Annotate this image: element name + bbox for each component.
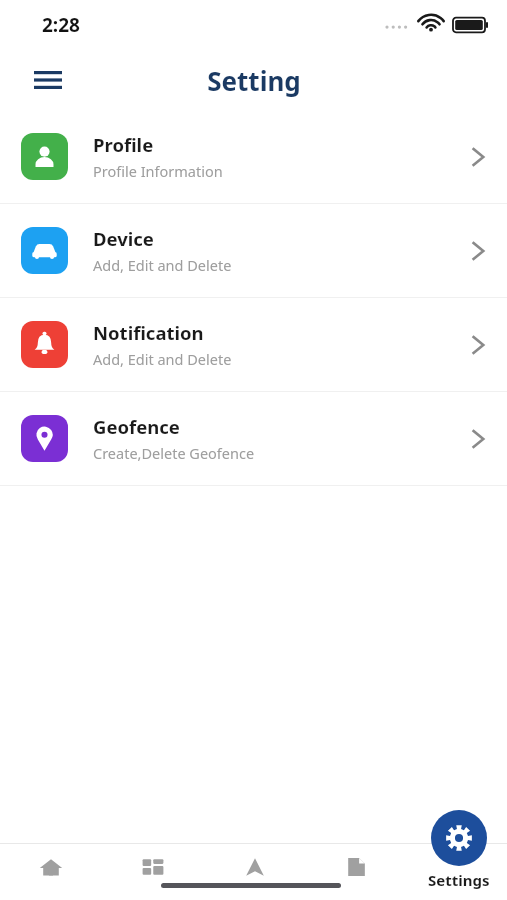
button[interactable]: Device [0, 204, 507, 297]
button[interactable]: Settings [424, 810, 494, 894]
button[interactable]: Navigate [204, 844, 305, 900]
button[interactable]: Reports [305, 844, 406, 900]
button[interactable]: Menu [26, 58, 70, 102]
button[interactable]: Profile [0, 110, 507, 203]
staticText: Notification [93, 320, 204, 345]
button[interactable]: Notification [0, 298, 507, 391]
staticText: Setting [207, 63, 301, 98]
staticText: Profile Information [93, 161, 223, 181]
staticText: Add, Edit and Delete [93, 349, 232, 369]
staticText: Profile [93, 132, 154, 157]
staticText: Settings [428, 870, 490, 890]
button[interactable]: Geofence [0, 392, 507, 485]
staticText: Add, Edit and Delete [93, 255, 232, 275]
staticText: 2:28 [42, 12, 80, 38]
staticText: Device [93, 226, 154, 251]
button[interactable]: Dashboard [102, 844, 204, 900]
staticText: Geofence [93, 414, 180, 439]
staticText: Create,Delete Geofence [93, 443, 255, 463]
button[interactable]: Home [0, 844, 102, 900]
